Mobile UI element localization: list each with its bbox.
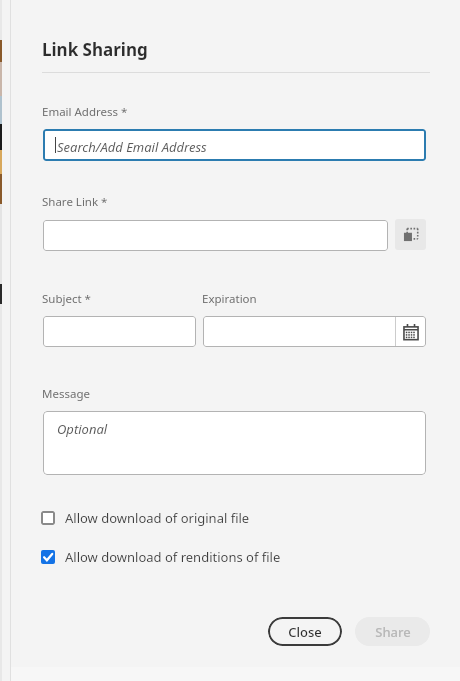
staticText: Message	[42, 386, 90, 402]
button[interactable]: Share	[355, 617, 430, 646]
staticText: Search/Add Email Address	[57, 138, 207, 156]
button[interactable]	[43, 220, 388, 251]
staticText: Email Address *	[42, 104, 128, 120]
button[interactable]: Search/Add Email Address	[43, 129, 426, 161]
staticText: Share	[375, 623, 411, 641]
button[interactable]	[43, 316, 196, 347]
button[interactable]: Close	[268, 617, 342, 646]
staticText: Link Sharing	[42, 38, 148, 61]
button[interactable]: Pick expiration date	[396, 317, 426, 346]
staticText: Close	[288, 623, 322, 641]
button[interactable]: Copy link	[395, 219, 426, 250]
button[interactable]: Optional	[43, 411, 426, 475]
button[interactable]: Allow download of original file	[41, 509, 301, 527]
button[interactable]: Allow download of renditions of file	[41, 548, 321, 566]
staticText: Optional	[57, 420, 108, 438]
staticText: Subject *	[42, 291, 91, 307]
staticText: Expiration	[202, 291, 257, 307]
staticText: Share Link *	[42, 194, 108, 210]
staticText: Allow download of renditions of file	[65, 548, 281, 566]
staticText: Allow download of original file	[65, 509, 250, 527]
